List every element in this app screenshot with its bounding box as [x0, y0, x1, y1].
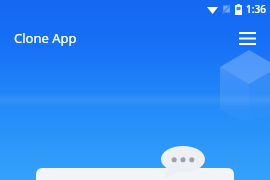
- button[interactable]: Menu: [232, 23, 262, 53]
- staticText: Clone App: [14, 29, 77, 47]
- button[interactable]: [36, 168, 234, 180]
- button[interactable]: Chat: [161, 146, 205, 179]
- staticText: 1:36: [246, 2, 266, 16]
